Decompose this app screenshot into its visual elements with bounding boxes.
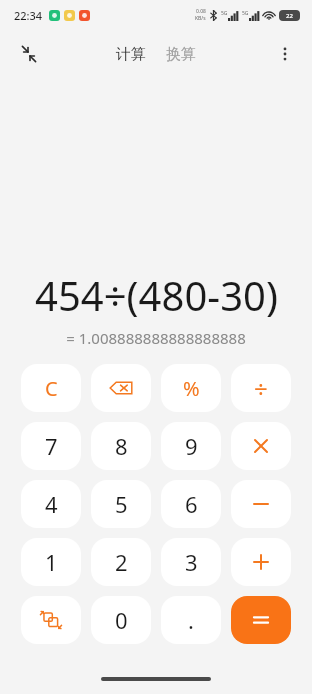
button[interactable]: Multiply (231, 422, 291, 470)
button[interactable]: Equals (231, 596, 291, 644)
staticText: KB/s (195, 15, 206, 22)
button[interactable]: ÷ (231, 364, 291, 412)
staticText: % (183, 375, 200, 402)
staticText: 5G (242, 10, 249, 17)
button[interactable]: C (21, 364, 81, 412)
button[interactable]: 计算 (110, 39, 152, 70)
button[interactable]: Plus (231, 538, 291, 586)
button[interactable]: 4 (21, 480, 81, 528)
button[interactable]: 3 (161, 538, 221, 586)
staticText: 22 (286, 12, 293, 20)
button[interactable]: More options (268, 37, 302, 71)
button[interactable]: 2 (91, 538, 151, 586)
staticText: 9 (185, 431, 198, 461)
button[interactable]: 5 (91, 480, 151, 528)
staticText: . (188, 605, 194, 635)
staticText: 0 (115, 605, 128, 635)
staticText: 3 (185, 547, 198, 577)
staticText: 454÷(480-30) (35, 268, 278, 322)
button[interactable]: 7 (21, 422, 81, 470)
button[interactable]: Minus (231, 480, 291, 528)
staticText: 7 (45, 431, 58, 461)
staticText: 6 (185, 489, 198, 519)
staticText: 5G (221, 10, 228, 17)
staticText: 2 (115, 547, 128, 577)
button[interactable]: 8 (91, 422, 151, 470)
button[interactable]: 6 (161, 480, 221, 528)
staticText: C (45, 375, 58, 402)
button[interactable]: 换算 (160, 39, 202, 70)
staticText: ÷ (254, 372, 268, 405)
button[interactable]: . (161, 596, 221, 644)
staticText: = 1.008888888888888888 (66, 328, 246, 348)
button[interactable]: 0 (91, 596, 151, 644)
button[interactable]: Collapse (12, 37, 46, 71)
button[interactable]: 9 (161, 422, 221, 470)
staticText: 计算 (116, 45, 146, 64)
button[interactable]: Backspace (91, 364, 151, 412)
staticText: 8 (115, 431, 128, 461)
button[interactable]: % (161, 364, 221, 412)
staticText: 5 (115, 489, 128, 519)
staticText: 4 (45, 489, 58, 519)
staticText: 1 (45, 547, 58, 577)
staticText: 22:34 (14, 8, 43, 23)
staticText: 换算 (166, 45, 196, 64)
button[interactable]: 1 (21, 538, 81, 586)
button[interactable]: Convert (21, 596, 81, 644)
staticText: 0.08 (196, 8, 206, 15)
